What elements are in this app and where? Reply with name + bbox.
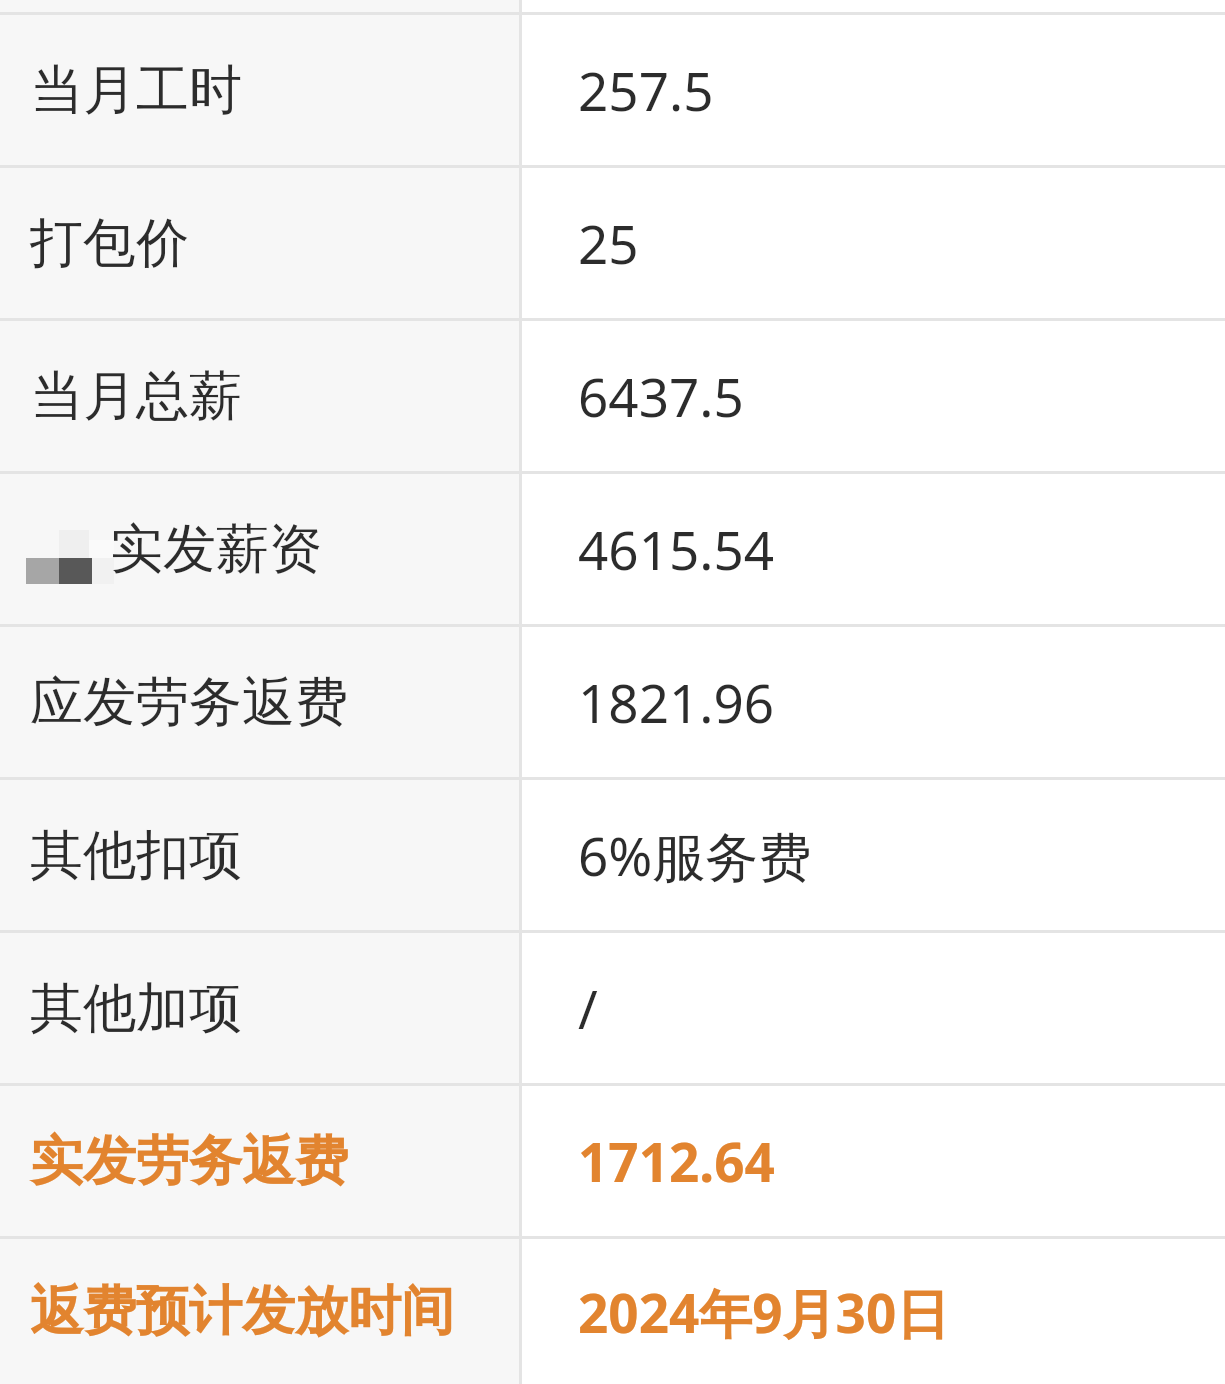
staticText: 6437.5 <box>578 360 744 432</box>
button[interactable]: 实发薪资 <box>0 474 1225 624</box>
staticText: 25 <box>578 207 639 279</box>
staticText: / <box>578 972 598 1044</box>
staticText: 6%服务费 <box>578 819 812 891</box>
staticText: 其他加项 <box>30 975 242 1042</box>
staticText: 实发薪资 <box>110 516 322 583</box>
button[interactable]: 当月总薪 <box>0 321 1225 471</box>
staticText: 1821.96 <box>578 666 775 738</box>
staticText: 257.5 <box>578 54 714 126</box>
button[interactable]: 打包价 <box>0 168 1225 318</box>
staticText: 打包价 <box>30 210 189 277</box>
staticText: 当月总薪 <box>30 363 242 430</box>
button[interactable]: 应发劳务返费 <box>0 627 1225 777</box>
staticText: 2024年9月30日 <box>578 1276 950 1348</box>
staticText: 当月工时 <box>30 57 242 124</box>
button[interactable]: 返费预计发放时间 <box>0 1239 1225 1384</box>
staticText: 返费预计发放时间 <box>30 1278 454 1345</box>
staticText: 实发劳务返费 <box>30 1128 348 1195</box>
staticText: 应发劳务返费 <box>30 669 348 736</box>
staticText: 4615.54 <box>578 513 775 585</box>
staticText: 1712.64 <box>578 1125 775 1197</box>
button[interactable]: 当月工时 <box>0 15 1225 165</box>
staticText: 其他扣项 <box>30 822 242 889</box>
button[interactable]: 其他扣项 <box>0 780 1225 930</box>
button[interactable]: 其他加项 <box>0 933 1225 1083</box>
button[interactable]: 实发劳务返费 <box>0 1086 1225 1236</box>
